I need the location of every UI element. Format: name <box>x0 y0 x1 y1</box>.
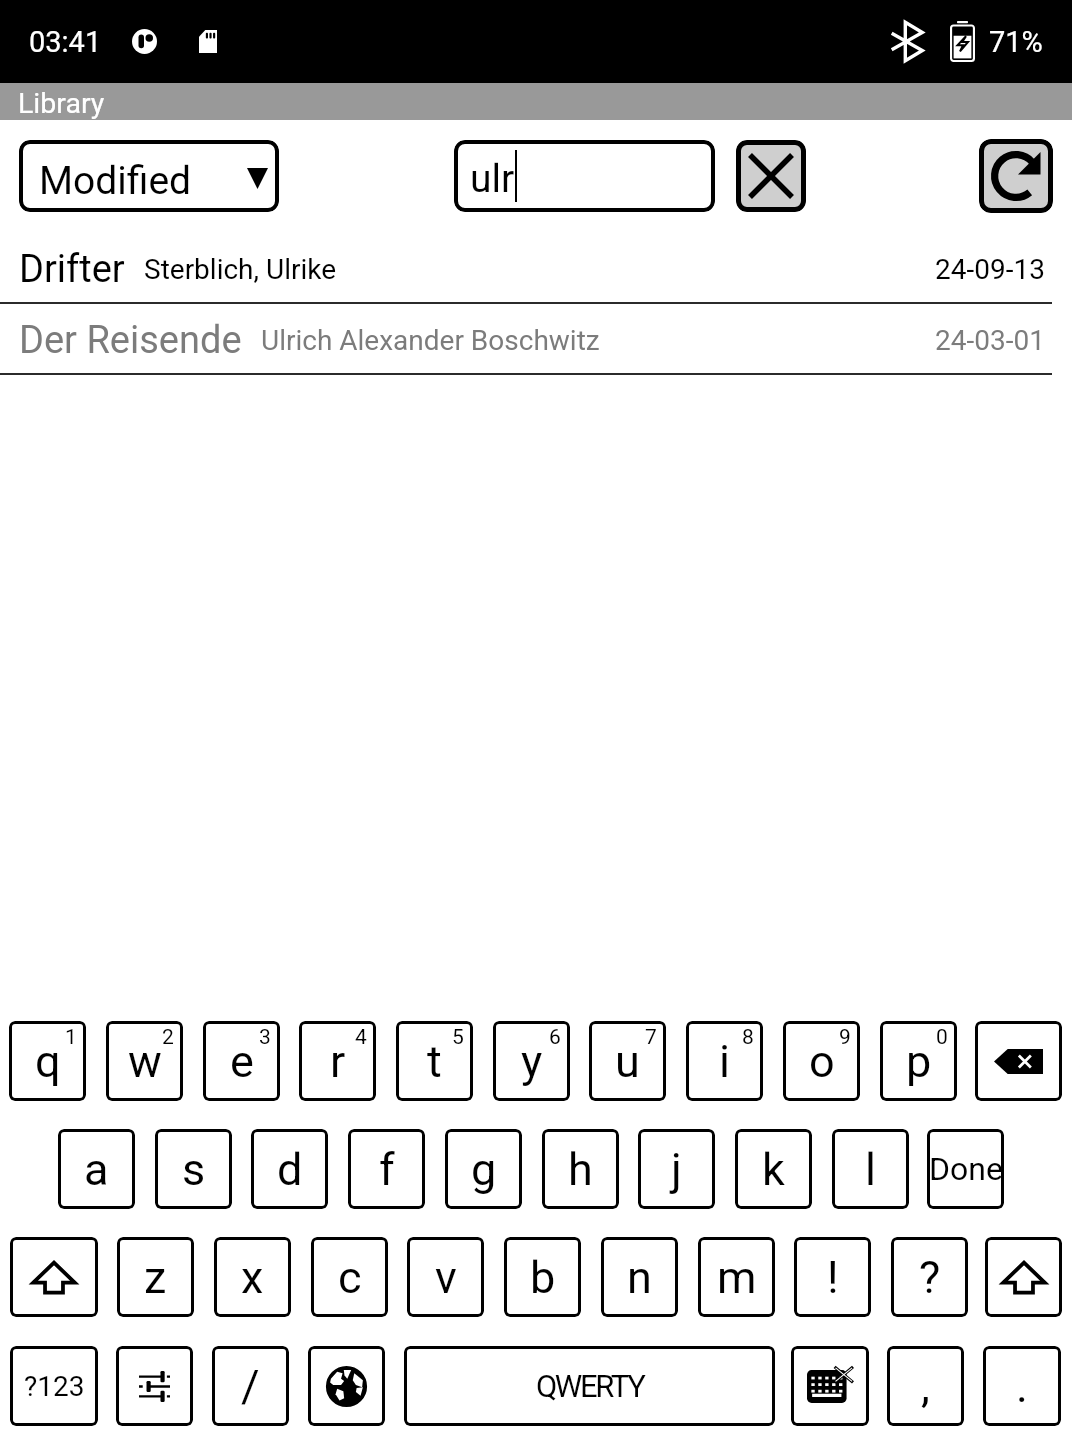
staticText: z <box>144 1251 167 1304</box>
staticText: e <box>230 1035 254 1088</box>
button[interactable]: , <box>887 1346 964 1426</box>
button[interactable]: v <box>407 1237 484 1317</box>
staticText: d <box>277 1143 303 1196</box>
button[interactable]: m <box>698 1237 775 1317</box>
staticText: 4 <box>355 1025 367 1050</box>
staticText: y <box>521 1035 543 1088</box>
button[interactable]: t <box>396 1021 473 1101</box>
button[interactable]: n <box>601 1237 678 1317</box>
staticText: 9 <box>839 1025 851 1050</box>
staticText: QWERTY <box>536 1368 644 1404</box>
staticText: r <box>330 1035 346 1088</box>
staticText: j <box>671 1143 682 1196</box>
button[interactable]: Backspace <box>975 1021 1062 1101</box>
button[interactable]: Change language <box>308 1346 385 1426</box>
staticText: Sterblich, Ulrike <box>144 253 337 286</box>
button[interactable]: Keyboard settings <box>116 1346 193 1426</box>
staticText: 7 <box>645 1025 657 1050</box>
staticText: a <box>84 1143 109 1196</box>
staticText: n <box>627 1251 652 1304</box>
staticText: 8 <box>742 1025 754 1050</box>
button[interactable]: d <box>251 1129 328 1209</box>
button[interactable]: Shift <box>10 1237 98 1317</box>
button[interactable]: Shift <box>985 1237 1062 1317</box>
button[interactable]: e <box>203 1021 280 1101</box>
staticText: 6 <box>549 1025 561 1050</box>
staticText: Done <box>929 1150 1003 1188</box>
button[interactable]: z <box>117 1237 194 1317</box>
staticText: u <box>615 1035 640 1088</box>
button[interactable]: ! <box>794 1237 871 1317</box>
staticText: 03:41 <box>29 25 102 59</box>
staticText: 1 <box>65 1025 77 1050</box>
button[interactable]: Clear search <box>736 140 806 212</box>
staticText: . <box>1016 1360 1028 1413</box>
staticText: 5 <box>452 1025 464 1050</box>
button[interactable]: Refresh <box>979 139 1053 213</box>
button[interactable]: s <box>155 1129 232 1209</box>
staticText: m <box>717 1251 757 1304</box>
button[interactable]: / <box>212 1346 289 1426</box>
button[interactable]: r <box>299 1021 376 1101</box>
staticText: ?123 <box>24 1370 85 1403</box>
button[interactable]: f <box>348 1129 425 1209</box>
button[interactable]: a <box>58 1129 135 1209</box>
staticText: f <box>379 1143 395 1196</box>
staticText: / <box>241 1360 260 1413</box>
staticText: p <box>906 1035 932 1088</box>
staticText: Library <box>18 87 105 120</box>
staticText: 71% <box>989 25 1043 59</box>
button[interactable]: w <box>106 1021 183 1101</box>
staticText: s <box>182 1143 206 1196</box>
staticText: 3 <box>259 1025 271 1050</box>
button[interactable]: b <box>504 1237 581 1317</box>
button[interactable]: i <box>686 1021 763 1101</box>
button[interactable]: u <box>589 1021 666 1101</box>
staticText: w <box>128 1035 162 1088</box>
staticText: h <box>568 1143 593 1196</box>
button[interactable]: ulr <box>454 140 715 212</box>
staticText: ! <box>827 1251 839 1304</box>
staticText: x <box>241 1251 264 1304</box>
staticText: Modified <box>39 158 192 204</box>
button[interactable]: Hide keyboard <box>791 1346 869 1426</box>
staticText: i <box>719 1035 730 1088</box>
button[interactable]: h <box>542 1129 619 1209</box>
staticText: o <box>809 1035 835 1088</box>
staticText: ? <box>919 1251 941 1304</box>
staticText: g <box>471 1143 497 1196</box>
button[interactable]: p <box>880 1021 957 1101</box>
button[interactable]: c <box>311 1237 388 1317</box>
staticText: k <box>762 1143 785 1196</box>
staticText: 24-09-13 <box>935 253 1045 286</box>
staticText: 2 <box>162 1025 174 1050</box>
button[interactable]: ?123 <box>10 1346 98 1426</box>
button[interactable]: Der Reisende <box>0 304 1072 373</box>
staticText: v <box>435 1251 457 1304</box>
button[interactable]: l <box>832 1129 909 1209</box>
staticText: 24-03-01 <box>935 324 1045 357</box>
button[interactable]: Drifter <box>0 233 1072 302</box>
staticText: c <box>338 1251 362 1304</box>
button[interactable]: Done <box>927 1129 1004 1209</box>
button[interactable]: ? <box>891 1237 968 1317</box>
staticText: q <box>35 1035 61 1088</box>
staticText: t <box>427 1035 442 1088</box>
staticText: l <box>865 1143 876 1196</box>
button[interactable]: QWERTY <box>404 1346 775 1426</box>
button[interactable]: q <box>9 1021 86 1101</box>
staticText: Der Reisende <box>19 318 242 363</box>
button[interactable]: g <box>445 1129 522 1209</box>
staticText: 0 <box>936 1025 948 1050</box>
button[interactable]: . <box>983 1346 1061 1426</box>
staticText: , <box>921 1360 930 1413</box>
button[interactable]: x <box>214 1237 291 1317</box>
button[interactable]: y <box>493 1021 570 1101</box>
staticText: Ulrich Alexander Boschwitz <box>261 324 600 357</box>
button[interactable]: o <box>783 1021 860 1101</box>
button[interactable]: j <box>638 1129 715 1209</box>
button[interactable]: k <box>735 1129 812 1209</box>
staticText: ulr <box>470 156 515 202</box>
staticText: b <box>530 1251 556 1304</box>
button[interactable]: Modified <box>19 140 279 212</box>
